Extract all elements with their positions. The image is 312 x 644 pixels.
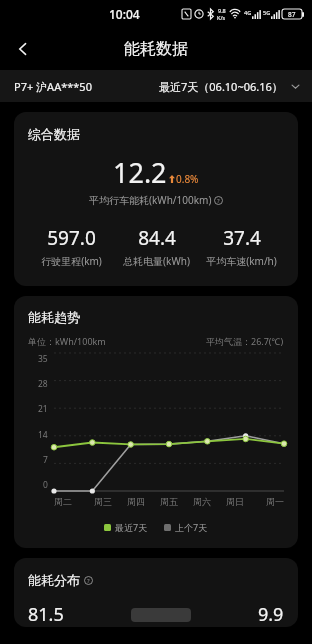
button[interactable]: 综合数据	[14, 112, 298, 286]
staticText: 能耗趋势	[28, 309, 80, 325]
staticText: 周一	[266, 496, 284, 507]
button[interactable]: 最近7天（06.10~06.16）	[159, 79, 300, 94]
staticText: 0.8%	[176, 172, 199, 186]
staticText: 81.5	[28, 602, 64, 627]
button[interactable]: P7+ 沪AA***50	[14, 79, 92, 94]
staticText: 上个7天	[175, 521, 208, 533]
staticText: 0	[43, 479, 48, 491]
staticText: 周二	[54, 496, 72, 507]
staticText: 最近7天（06.10~06.16）	[159, 79, 283, 94]
button[interactable]: 能耗分布	[14, 558, 298, 627]
staticText: 9.8	[218, 7, 226, 14]
staticText: 能耗数据	[124, 39, 188, 59]
staticText: 平均行车能耗(kWh/100km)	[89, 193, 212, 207]
staticText: 14	[38, 429, 48, 441]
staticText: 周日	[226, 496, 244, 507]
staticText: 总耗电量(kWh)	[123, 254, 190, 268]
button[interactable]: Back	[6, 32, 40, 66]
staticText: 597.0	[47, 225, 96, 251]
staticText: 9.9	[258, 602, 284, 627]
staticText: 12.2	[113, 154, 167, 191]
staticText: 35	[38, 353, 48, 365]
button[interactable]: 能耗趋势	[14, 296, 298, 548]
staticText: 综合数据	[28, 126, 80, 142]
staticText: ?	[217, 197, 220, 205]
staticText: 5G	[263, 9, 271, 16]
staticText: 行驶里程(km)	[41, 254, 102, 268]
staticText: 周三	[94, 496, 112, 507]
staticText: 周五	[160, 496, 178, 507]
staticText: 单位：kWh/100km	[28, 335, 106, 347]
staticText: ?	[87, 577, 90, 585]
staticText: 最近7天	[115, 521, 148, 533]
staticText: 周四	[127, 496, 145, 507]
staticText: 28	[38, 378, 48, 390]
staticText: 84.4	[138, 225, 176, 251]
staticText: 87	[288, 10, 296, 19]
staticText: 21	[38, 403, 48, 415]
staticText: 周六	[193, 496, 211, 507]
staticText: 7	[43, 454, 48, 466]
staticText: 10:04	[109, 6, 140, 22]
staticText: 平均车速(km/h)	[206, 254, 277, 268]
staticText: 能耗分布	[28, 572, 80, 588]
staticText: P7+ 沪AA***50	[14, 79, 92, 94]
staticText: 4G	[244, 9, 252, 16]
staticText: 37.4	[223, 225, 261, 251]
staticText: K/s	[217, 14, 226, 21]
staticText: 平均气温：26.7(℃)	[206, 335, 284, 347]
